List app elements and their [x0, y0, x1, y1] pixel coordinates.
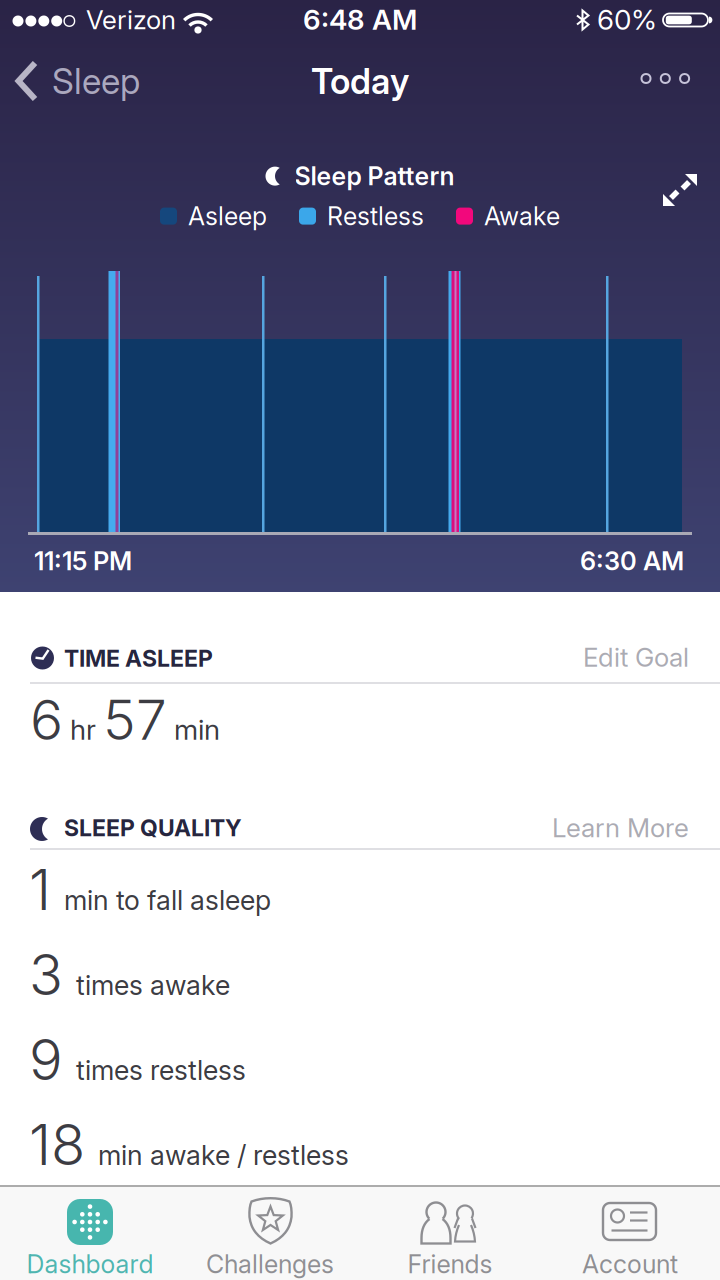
staticText: Sleep Pattern [294, 161, 454, 191]
staticText: 3 [29, 941, 63, 1008]
staticText: 1 [29, 856, 51, 923]
staticText: Learn More [552, 812, 689, 843]
staticText: Friends [407, 1249, 492, 1279]
staticText: Account [582, 1249, 678, 1279]
staticText: Verizon [86, 4, 176, 35]
staticText: 6 [30, 686, 63, 753]
staticText: min [174, 713, 220, 747]
staticText: TIME ASLEEP [64, 644, 213, 672]
staticText: Dashboard [26, 1249, 153, 1279]
staticText: 6:30 AM [580, 545, 684, 576]
staticText: 11:15 PM [34, 545, 132, 576]
staticText: Asleep [188, 201, 267, 231]
staticText: times awake [76, 969, 230, 1001]
staticText: 60% [597, 2, 657, 36]
staticText: Restless [327, 201, 424, 231]
staticText: Awake [484, 201, 560, 231]
staticText: 57 [103, 686, 167, 753]
staticText: 18 [29, 1111, 85, 1178]
staticText: Edit Goal [583, 641, 689, 673]
staticText: Sleep [52, 60, 140, 102]
staticText: min to fall asleep [64, 884, 271, 916]
staticText: hr [70, 713, 96, 747]
staticText: min awake / restless [98, 1139, 349, 1171]
staticText: Challenges [206, 1249, 334, 1279]
staticText: 9 [29, 1026, 63, 1093]
staticText: SLEEP QUALITY [64, 814, 242, 842]
staticText: times restless [76, 1054, 246, 1086]
staticText: 6:48 AM [303, 2, 417, 36]
staticText: Today [311, 60, 409, 102]
